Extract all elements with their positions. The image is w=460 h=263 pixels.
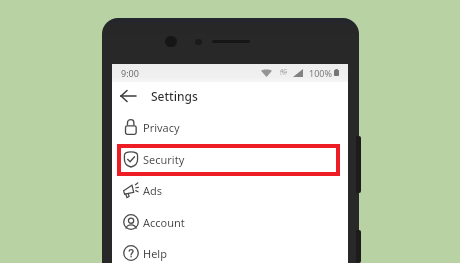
button[interactable]: Back [116,84,140,108]
button[interactable]: Account [112,206,348,238]
staticText: Privacy [143,120,180,135]
button[interactable]: Ads [112,174,348,206]
staticText: 100% [309,67,332,79]
staticText: Help [143,246,167,261]
button[interactable]: Security highlighted [117,144,340,176]
staticText: Account [143,215,185,230]
button[interactable]: Privacy [112,111,348,143]
staticText: Settings [151,88,198,104]
staticText: 9:00 [121,67,139,79]
staticText: LTE [280,71,287,76]
button[interactable]: Security [112,143,348,175]
staticText: Ads [143,183,163,198]
staticText: 4G [280,67,288,74]
button[interactable]: Help [112,237,348,263]
staticText: Security [143,152,185,167]
